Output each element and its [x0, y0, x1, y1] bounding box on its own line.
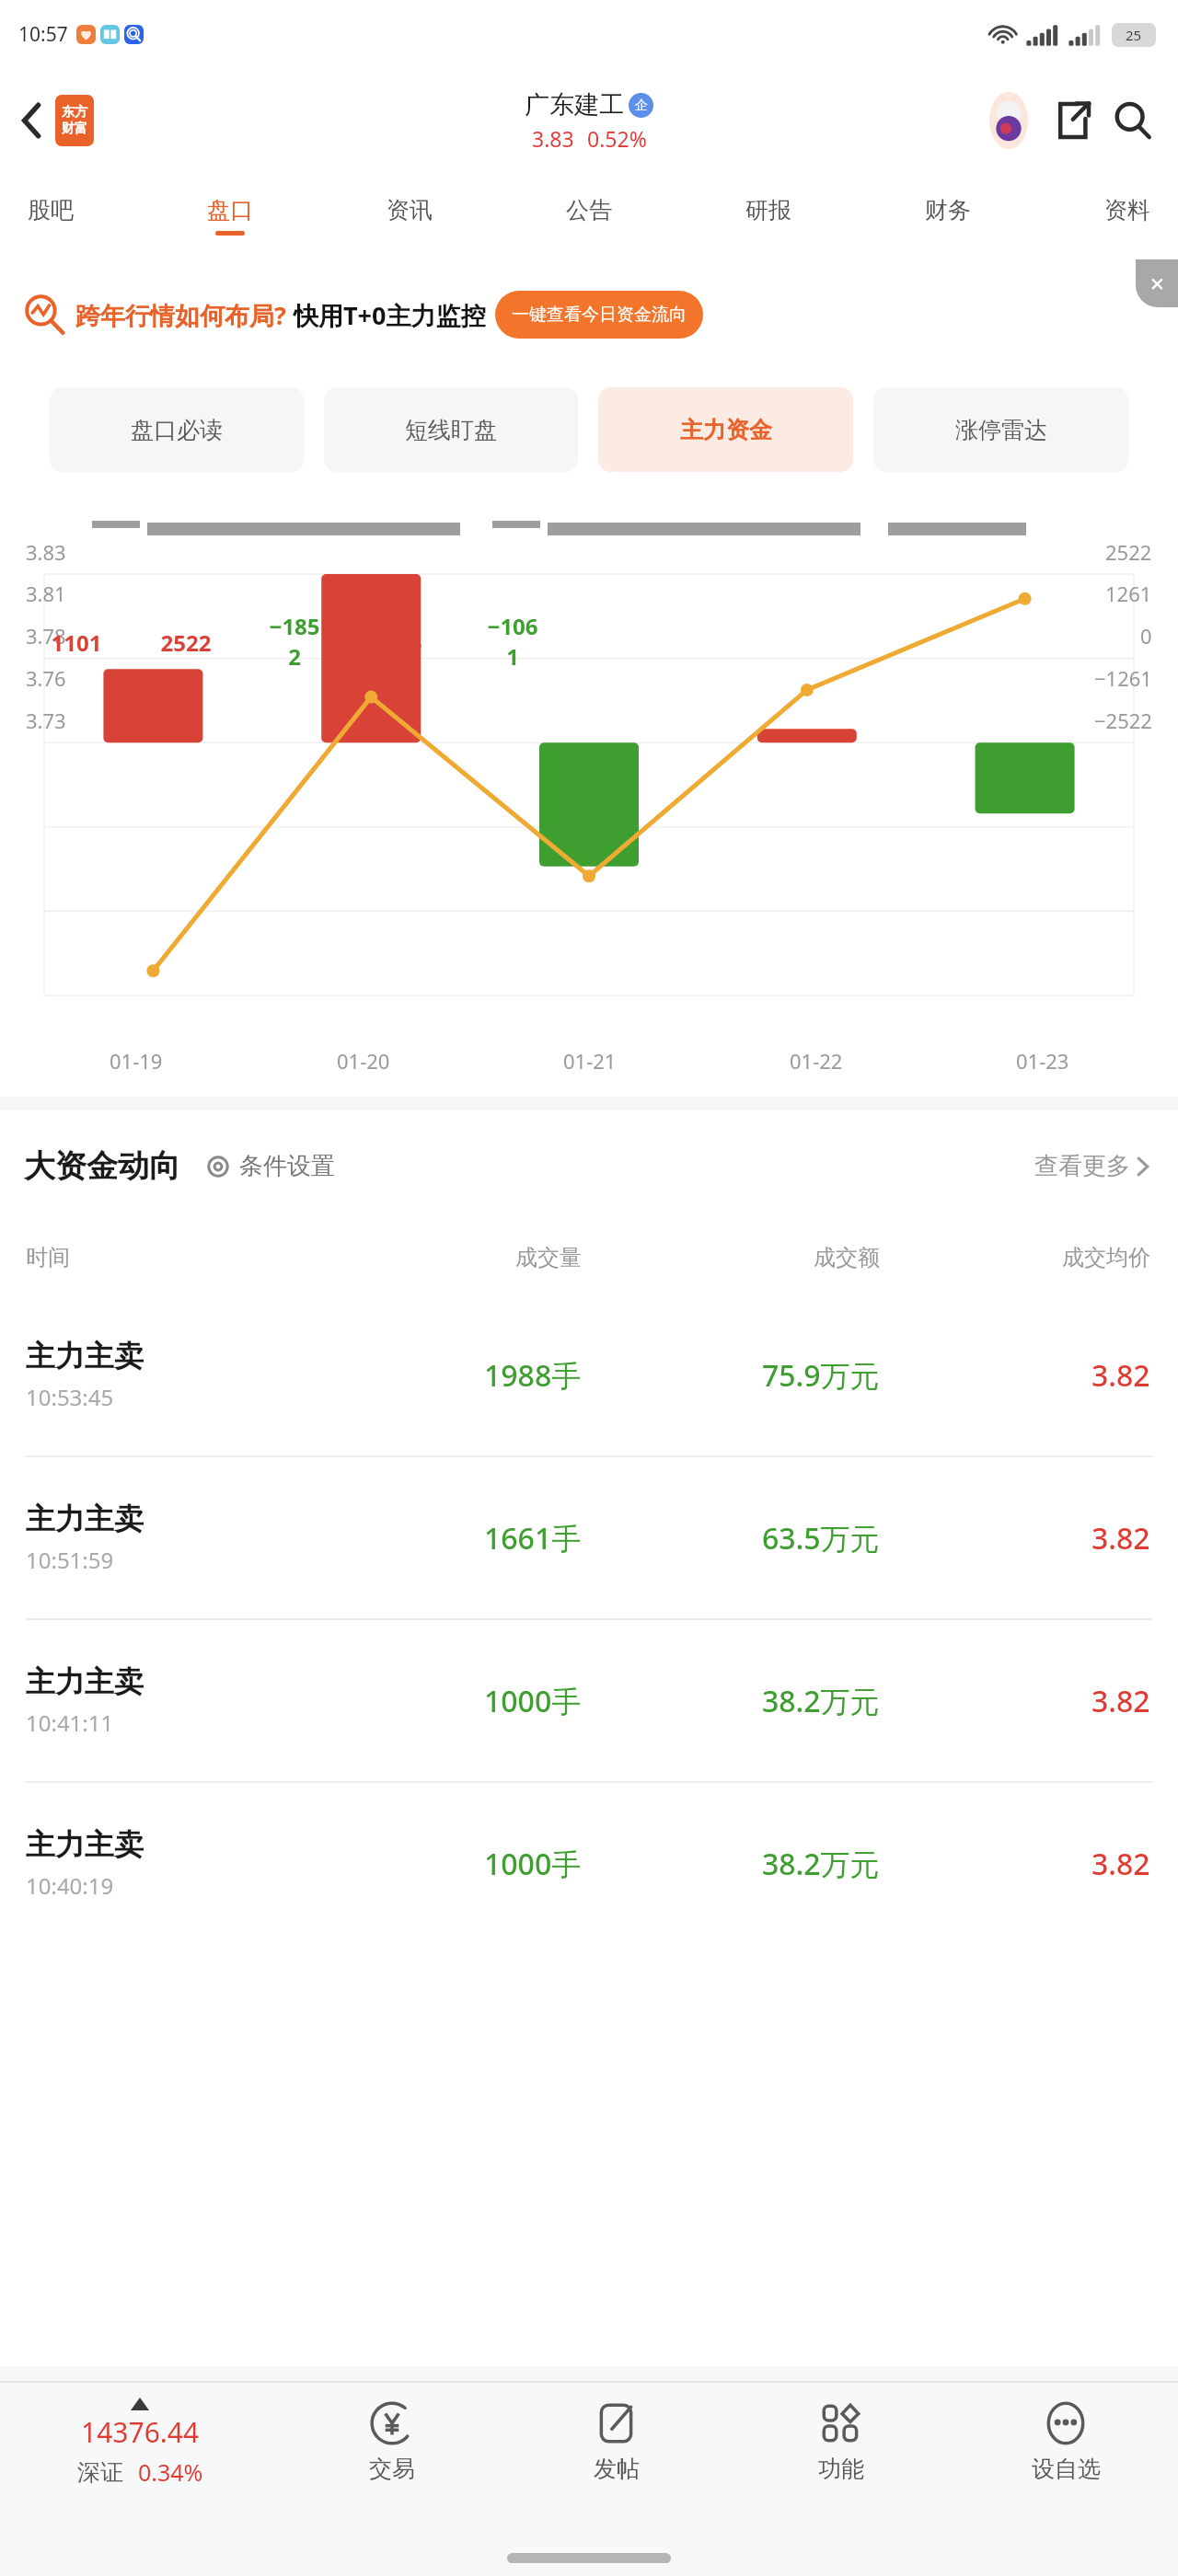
staticText: 主力主卖 [26, 1663, 144, 1700]
button[interactable]: Assistant [979, 91, 1038, 150]
button[interactable]: 资料 [1097, 190, 1158, 241]
staticText: 主力主卖 [26, 1826, 144, 1863]
staticText: 企 [635, 98, 648, 114]
button[interactable]: 主力主卖 [0, 1620, 1178, 1781]
staticText: 东方 [62, 104, 87, 121]
staticText: 3.83 [532, 124, 574, 153]
staticText: 成交量 [515, 1244, 582, 1271]
staticText: 38.2万元 [762, 1844, 880, 1884]
staticText: 01-21 [563, 1047, 617, 1075]
button[interactable]: 设自选 [953, 2383, 1178, 2483]
staticText: 跨年行情如何布局? [75, 298, 286, 332]
staticText: 10:53:45 [26, 1382, 114, 1412]
staticText: ✕ [1149, 273, 1165, 294]
staticText: 盘口 [207, 196, 253, 224]
button[interactable]: 一键查看今日资金流向 [495, 291, 703, 339]
button[interactable]: 发帖 [504, 2383, 729, 2483]
staticText: 10:41:11 [26, 1708, 114, 1738]
button[interactable]: Back [11, 87, 101, 154]
staticText: 1661手 [484, 1518, 582, 1558]
button[interactable]: 条件设置 [201, 1147, 339, 1185]
staticText: 研报 [745, 196, 791, 224]
button[interactable]: 盘口 [200, 190, 260, 241]
staticText: 交易 [369, 2455, 415, 2483]
staticText: 2522 [158, 627, 214, 658]
staticText: 1261 [1105, 580, 1152, 607]
staticText: 10:57 [18, 21, 68, 48]
staticText: 0 [1140, 622, 1152, 650]
staticText: 查看更多 [1034, 1151, 1130, 1181]
button[interactable]: 盘口必读 [50, 387, 304, 472]
staticText: 涨停雷达 [955, 416, 1047, 444]
staticText: 3.81 [26, 580, 66, 607]
staticText: 3.78 [26, 622, 66, 650]
staticText: 14376.44 [81, 2413, 200, 2451]
staticText: 成交均价 [1062, 1244, 1150, 1271]
button[interactable]: 股吧 [20, 190, 81, 241]
staticText: −2522 [1094, 707, 1152, 734]
staticText: 时间 [26, 1244, 70, 1271]
staticText: 条件设置 [239, 1151, 335, 1181]
staticText: 3.73 [26, 707, 66, 734]
button[interactable]: 交易 [280, 2383, 504, 2483]
staticText: 01-20 [337, 1047, 390, 1075]
staticText: 设自选 [1032, 2455, 1101, 2483]
staticText: 一键查看今日资金流向 [512, 304, 687, 326]
button[interactable]: 涨停雷达 [873, 387, 1128, 472]
staticText: 206 [375, 627, 431, 658]
staticText: 公告 [566, 196, 612, 224]
button[interactable]: 财务 [918, 190, 978, 241]
staticText: 资料 [1104, 196, 1150, 224]
button[interactable]: 跨年行情如何布局? [0, 259, 1178, 370]
staticText: 3.76 [26, 664, 66, 692]
button[interactable]: Close [1136, 259, 1178, 307]
button[interactable]: 研报 [738, 190, 799, 241]
staticText: 功能 [818, 2455, 864, 2483]
button[interactable]: 资讯 [379, 190, 440, 241]
button[interactable]: Search [1106, 94, 1160, 147]
staticText: 大资金动向 [24, 1146, 180, 1186]
button[interactable]: 短线盯盘 [324, 387, 578, 472]
staticText: 快用T+0主力监控 [294, 298, 486, 332]
staticText: 财务 [925, 196, 971, 224]
staticText: 01-19 [110, 1047, 163, 1075]
staticText: 38.2万元 [762, 1681, 880, 1721]
staticText: 资讯 [387, 196, 433, 224]
staticText: 盘口必读 [131, 416, 223, 444]
staticText: 1988手 [484, 1355, 582, 1396]
staticText: 发帖 [594, 2455, 640, 2483]
staticText: −1852 [267, 611, 322, 672]
staticText: 成交额 [814, 1244, 880, 1271]
button[interactable]: 查看更多 [1031, 1147, 1154, 1185]
staticText: 3.83 [26, 538, 66, 566]
staticText: 0.52% [587, 124, 647, 153]
staticText: 75.9万元 [762, 1355, 880, 1396]
staticText: 主力主卖 [26, 1501, 144, 1537]
button[interactable]: 公告 [559, 190, 619, 241]
button[interactable]: Share [1045, 94, 1099, 147]
button[interactable]: 14376.44 [0, 2383, 280, 2488]
staticText: 10:51:59 [26, 1545, 114, 1575]
staticText: 1101 [49, 627, 104, 658]
staticText: 0.34% [138, 2456, 203, 2488]
staticText: 1000手 [484, 1681, 582, 1721]
staticText: −1261 [1094, 664, 1152, 692]
staticText: 25 [1126, 26, 1142, 44]
staticText: 主力主卖 [26, 1338, 144, 1374]
button[interactable]: 主力主卖 [0, 1457, 1178, 1618]
staticText: 2522 [1105, 538, 1152, 566]
staticText: 3.82 [1091, 1844, 1150, 1884]
staticText: 3.82 [1091, 1681, 1150, 1721]
staticText: 广东建工 [525, 89, 624, 121]
button[interactable]: 主力主卖 [0, 1294, 1178, 1455]
staticText: 3.82 [1091, 1355, 1150, 1396]
staticText: 短线盯盘 [405, 416, 497, 444]
button[interactable]: 主力主卖 [0, 1783, 1178, 1944]
button[interactable]: 主力资金 [598, 387, 853, 472]
staticText: 主力资金 [680, 416, 772, 444]
staticText: 3.82 [1091, 1518, 1150, 1558]
button[interactable]: 功能 [729, 2383, 953, 2483]
staticText: 1000手 [484, 1844, 582, 1884]
staticText: 10:40:19 [26, 1870, 114, 1901]
staticText: 63.5万元 [762, 1518, 880, 1558]
